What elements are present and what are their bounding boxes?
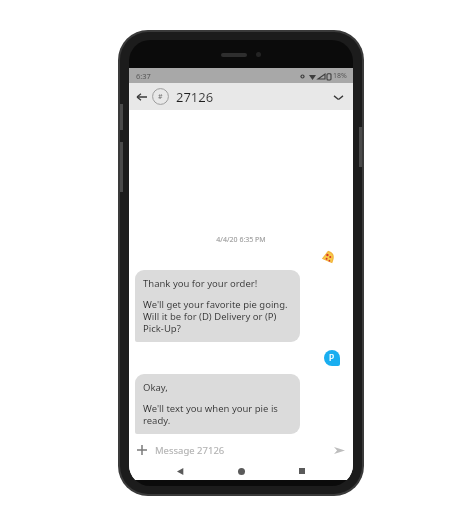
staticText: We'll get your favorite pie going. Will … bbox=[143, 298, 292, 335]
staticText: 6:37 bbox=[136, 71, 151, 81]
staticText: 4/4/20 6:35 PM bbox=[216, 235, 266, 245]
staticText: Message 27126 bbox=[155, 444, 225, 457]
button[interactable]: Thank you for your order! bbox=[135, 270, 300, 342]
button[interactable]: Back bbox=[170, 462, 190, 480]
button[interactable]: Add attachment bbox=[134, 442, 150, 458]
button[interactable]: P bbox=[324, 350, 340, 366]
staticText: 18% bbox=[333, 71, 347, 81]
staticText: P bbox=[329, 352, 335, 364]
button[interactable]: Message 27126 bbox=[155, 438, 331, 462]
button[interactable]: Home bbox=[231, 462, 251, 480]
staticText: Okay, bbox=[143, 381, 168, 394]
staticText: We'll text you when your pie is ready. bbox=[143, 402, 292, 427]
button[interactable]: Back bbox=[134, 89, 150, 105]
button[interactable]: Expand bbox=[330, 89, 346, 105]
staticText: 27126 bbox=[176, 88, 214, 106]
button[interactable]: Recent apps bbox=[292, 462, 312, 480]
button[interactable]: Okay, bbox=[135, 374, 300, 434]
staticText: Thank you for your order! bbox=[143, 277, 258, 290]
staticText: # bbox=[158, 92, 163, 102]
button[interactable]: Contact avatar bbox=[152, 88, 169, 105]
button[interactable]: Send bbox=[331, 442, 347, 458]
